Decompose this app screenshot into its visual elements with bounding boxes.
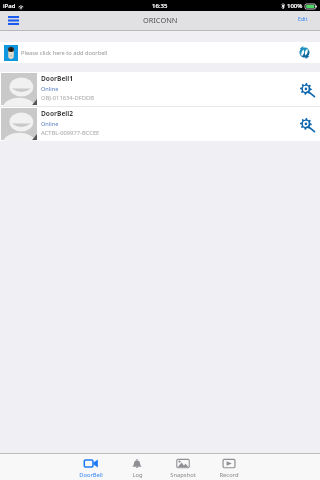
staticText: DoorBell [79,471,103,479]
staticText: Online [41,120,59,128]
staticText: iPad [3,2,16,10]
staticText: Record [219,471,239,479]
button[interactable]: Menu [5,12,22,29]
button[interactable]: Refresh [297,45,312,60]
staticText: Snapshot [170,471,196,479]
button[interactable]: Log [114,454,160,480]
staticText: 100% [287,2,303,10]
staticText: Please click here to add doorbell [21,49,108,57]
button[interactable]: Snapshot [160,454,206,480]
button[interactable]: DoorBell [68,454,114,480]
button[interactable]: Record [206,454,252,480]
button[interactable]: DoorBell2 [0,107,320,141]
staticText: DoorBell2 [41,109,74,118]
staticText: ORICONN [143,15,178,25]
staticText: OBJ-011634-DFDDB [41,94,94,102]
staticText: Edit [298,15,308,22]
staticText: Online [41,85,59,93]
button[interactable]: DoorBell1 [0,72,320,106]
button[interactable]: Settings [299,82,314,97]
staticText: Log [132,471,143,479]
staticText: 16:35 [152,2,168,10]
button[interactable]: Please click here to add doorbell [0,42,320,63]
button[interactable]: Edit [298,15,308,22]
staticText: DoorBell1 [41,74,74,83]
button[interactable]: Settings [299,117,314,132]
staticText: ACTBL-009977-BCCEE [41,129,100,137]
